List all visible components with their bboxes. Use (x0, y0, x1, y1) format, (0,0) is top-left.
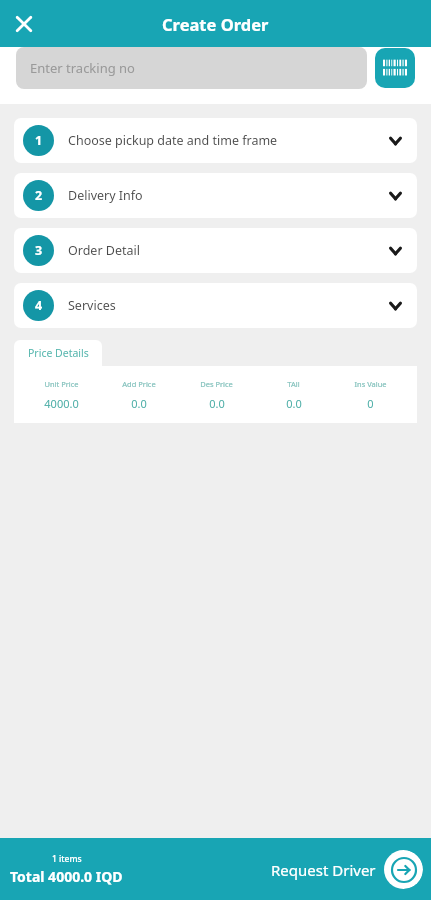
staticText: Enter tracking no (30, 59, 135, 77)
button[interactable]: 1 (14, 118, 417, 163)
staticText: 1 items (52, 853, 82, 865)
staticText: 4 (35, 297, 43, 314)
other: Expand (382, 293, 408, 319)
staticText: 0.0 (286, 396, 302, 411)
staticText: Add Price (122, 379, 156, 389)
staticText: Order Detail (68, 242, 382, 259)
staticText: 2 (35, 187, 43, 204)
staticText: Services (68, 297, 382, 314)
staticText: Total 4000.0 IQD (10, 867, 123, 886)
button[interactable]: Scan barcode (375, 48, 415, 88)
other: Expand (382, 183, 408, 209)
staticText: 0 (367, 396, 374, 411)
button[interactable]: 3 (14, 228, 417, 273)
button[interactable]: Request Driver (271, 850, 423, 889)
button[interactable]: Close (6, 6, 42, 42)
other: Expand (382, 128, 408, 154)
staticText: Des Price (200, 379, 233, 389)
staticText: Ins Value (354, 379, 387, 389)
button[interactable]: 4 (14, 283, 417, 328)
staticText: 1 (35, 132, 43, 149)
staticText: 3 (35, 242, 43, 259)
staticText: Delivery Info (68, 187, 382, 204)
staticText: Price Details (28, 346, 89, 360)
button[interactable]: Enter tracking no (16, 47, 367, 89)
staticText: Create Order (162, 13, 269, 35)
button[interactable]: 2 (14, 173, 417, 218)
staticText: 4000.0 (44, 396, 79, 411)
staticText: Request Driver (271, 860, 376, 880)
button[interactable]: Price Details (14, 340, 102, 366)
staticText: Unit Price (44, 379, 79, 389)
staticText: Choose pickup date and time frame (68, 132, 382, 149)
staticText: 0.0 (131, 396, 147, 411)
staticText: 0.0 (209, 396, 225, 411)
other: Expand (382, 238, 408, 264)
staticText: TAll (287, 379, 300, 389)
